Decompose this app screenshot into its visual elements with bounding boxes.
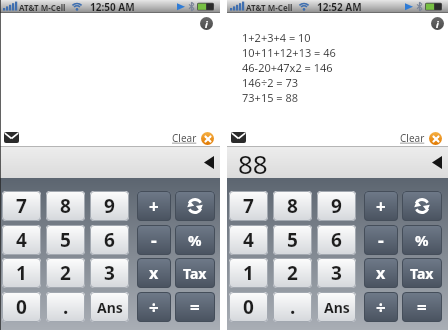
button[interactable]	[4, 132, 19, 143]
button[interactable]: =	[402, 292, 442, 322]
button[interactable]: x	[137, 258, 171, 288]
staticText: 73+15 = 88	[242, 90, 299, 105]
button[interactable]: -	[364, 225, 398, 255]
staticText: 0	[243, 294, 254, 320]
staticText: =	[190, 296, 200, 319]
staticText: ÷	[149, 296, 159, 319]
staticText: ÷	[376, 296, 386, 319]
staticText: 1	[16, 260, 27, 286]
staticText: Clear	[400, 131, 425, 145]
staticText: 8	[287, 193, 298, 219]
button[interactable]: 1	[229, 258, 268, 288]
button[interactable]: 4	[229, 225, 268, 255]
staticText: %	[188, 230, 202, 250]
staticText: 5	[287, 227, 298, 253]
staticText: i	[205, 18, 208, 30]
staticText: 9	[104, 193, 115, 219]
staticText: 4	[243, 227, 254, 253]
staticText: 7	[243, 193, 254, 219]
button[interactable]: 3	[317, 258, 356, 288]
button[interactable]: 4	[2, 225, 41, 255]
button[interactable]: 7	[2, 191, 41, 221]
button[interactable]: 8	[46, 191, 85, 221]
button[interactable]: %	[402, 225, 442, 255]
button[interactable]: Clear	[172, 131, 214, 145]
staticText: 8	[60, 193, 71, 219]
button[interactable]: 7	[229, 191, 268, 221]
button[interactable]: ÷	[364, 292, 398, 322]
staticText: Tax	[183, 264, 207, 283]
button[interactable]: %	[175, 225, 215, 255]
button[interactable]	[175, 191, 215, 221]
staticText: 3	[331, 260, 342, 286]
staticText: +	[149, 195, 159, 218]
button[interactable]: 9	[317, 191, 356, 221]
staticText: Ans	[324, 298, 350, 317]
staticText: 4	[16, 227, 27, 253]
button[interactable]: Clear	[400, 131, 442, 145]
button[interactable]: =	[175, 292, 215, 322]
staticText: 3	[104, 260, 115, 286]
staticText: =	[417, 296, 427, 319]
staticText: 2	[287, 260, 298, 286]
staticText: 0	[16, 294, 27, 320]
staticText: 7	[16, 193, 27, 219]
staticText: Tax	[410, 264, 434, 283]
button[interactable]: x	[364, 258, 398, 288]
button[interactable]: +	[137, 191, 171, 221]
button[interactable]: 8	[273, 191, 312, 221]
staticText: x	[376, 262, 386, 284]
button[interactable]: .	[273, 292, 312, 322]
staticText: 1	[243, 260, 254, 286]
button[interactable]	[231, 132, 246, 143]
staticText: %	[415, 230, 429, 250]
button[interactable]: 6	[317, 225, 356, 255]
button[interactable]: 0	[229, 292, 268, 322]
staticText: AT&T M-Cell	[19, 2, 66, 13]
staticText: .	[290, 294, 296, 320]
button[interactable]: Ans	[90, 292, 129, 322]
button[interactable]: Tax	[175, 258, 215, 288]
button[interactable]: i	[200, 17, 213, 30]
staticText: i	[436, 18, 439, 30]
staticText: 12:52 AM	[317, 0, 362, 13]
staticText: 9	[331, 193, 342, 219]
staticText: 10+11+12+13 = 46	[242, 45, 336, 60]
staticText: Ans	[97, 298, 123, 317]
button[interactable]: 5	[46, 225, 85, 255]
staticText: 6	[331, 227, 342, 253]
button[interactable]: 5	[273, 225, 312, 255]
button[interactable]: i	[431, 17, 444, 30]
button[interactable]: 6	[90, 225, 129, 255]
staticText: 2	[60, 260, 71, 286]
staticText: 6	[104, 227, 115, 253]
staticText: 1+2+3+4 = 10	[242, 30, 311, 45]
button[interactable]: ÷	[137, 292, 171, 322]
staticText: 5	[60, 227, 71, 253]
staticText: -	[151, 228, 157, 253]
button[interactable]: 0	[2, 292, 41, 322]
button[interactable]: 3	[90, 258, 129, 288]
staticText: AT&T M-Cell	[246, 2, 293, 13]
staticText: Clear	[172, 131, 197, 145]
staticText: x	[149, 262, 159, 284]
button[interactable]: Tax	[402, 258, 442, 288]
staticText: 88	[238, 146, 268, 178]
button[interactable]: +	[364, 191, 398, 221]
button[interactable]: 9	[90, 191, 129, 221]
button[interactable]: 1	[2, 258, 41, 288]
button[interactable]: -	[137, 225, 171, 255]
staticText: 146÷2 = 73	[242, 75, 299, 90]
button[interactable]: 2	[46, 258, 85, 288]
staticText: -	[378, 228, 384, 253]
button[interactable]	[402, 191, 442, 221]
staticText: 12:50 AM	[90, 0, 135, 13]
staticText: 46-20+47x2 = 146	[242, 60, 333, 75]
button[interactable]: Ans	[317, 292, 356, 322]
button[interactable]: .	[46, 292, 85, 322]
staticText: .	[63, 294, 69, 320]
staticText: +	[376, 195, 386, 218]
button[interactable]: 2	[273, 258, 312, 288]
